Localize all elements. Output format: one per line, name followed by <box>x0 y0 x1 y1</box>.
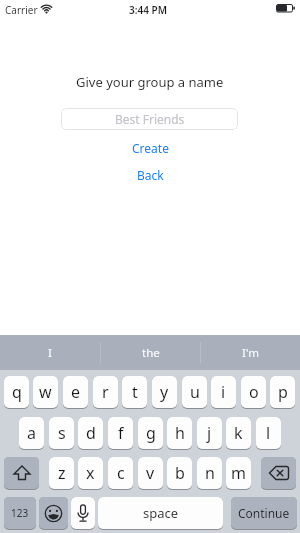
staticText: f <box>118 422 124 444</box>
button[interactable]: the <box>101 335 200 370</box>
button[interactable]: I'm <box>201 335 300 370</box>
staticText: y <box>160 381 169 403</box>
staticText: Give your group a name <box>76 73 224 91</box>
staticText: j <box>207 422 212 444</box>
button[interactable]: d <box>78 417 103 449</box>
staticText: I'm <box>242 345 259 361</box>
staticText: I <box>48 345 52 361</box>
button[interactable]: v <box>138 457 163 489</box>
staticText: z <box>58 462 66 484</box>
button[interactable]: z <box>49 457 74 489</box>
button[interactable]: x <box>78 457 103 489</box>
staticText: x <box>86 462 95 484</box>
button[interactable]: i <box>211 376 236 408</box>
staticText: n <box>205 462 215 484</box>
staticText: q <box>12 381 22 403</box>
button[interactable]: u <box>182 376 207 408</box>
button[interactable]: Best Friends <box>61 108 238 130</box>
button[interactable] <box>71 497 95 529</box>
staticText: c <box>117 462 125 484</box>
button[interactable]: s <box>49 417 74 449</box>
button[interactable]: n <box>197 457 222 489</box>
staticText: s <box>58 422 66 444</box>
staticText: the <box>142 345 160 361</box>
button[interactable]: b <box>167 457 192 489</box>
staticText: m <box>231 462 246 484</box>
button[interactable]: q <box>4 376 29 408</box>
staticText: o <box>249 381 259 403</box>
staticText: e <box>71 381 81 403</box>
staticText: w <box>39 381 52 403</box>
button[interactable]: p <box>270 376 295 408</box>
button[interactable]: a <box>19 417 44 449</box>
staticText: b <box>175 462 185 484</box>
staticText: 123 <box>11 506 29 520</box>
staticText: space <box>143 504 179 522</box>
button[interactable]: t <box>122 376 147 408</box>
button[interactable]: r <box>93 376 118 408</box>
button[interactable]: w <box>33 376 58 408</box>
button[interactable] <box>4 457 39 489</box>
staticText: 3:44 PM <box>129 3 167 17</box>
button[interactable]: Create <box>132 140 169 156</box>
button[interactable]: m <box>226 457 251 489</box>
staticText: t <box>132 381 138 403</box>
staticText: u <box>190 381 200 403</box>
button[interactable] <box>39 497 68 529</box>
staticText: r <box>102 381 109 403</box>
staticText: a <box>27 422 36 444</box>
button[interactable]: 123 <box>4 497 36 529</box>
button[interactable]: h <box>167 417 192 449</box>
staticText: Best Friends <box>115 111 185 127</box>
button[interactable]: Continue <box>231 497 297 529</box>
button[interactable]: l <box>256 417 281 449</box>
button[interactable]: space <box>98 497 223 529</box>
button[interactable]: o <box>241 376 266 408</box>
staticText: Continue <box>238 505 290 521</box>
button[interactable]: j <box>197 417 222 449</box>
staticText: g <box>146 422 156 444</box>
staticText: v <box>146 462 155 484</box>
staticText: l <box>266 422 271 444</box>
button[interactable]: y <box>152 376 177 408</box>
button[interactable]: Back <box>137 167 164 183</box>
button[interactable]: c <box>108 457 133 489</box>
button[interactable]: e <box>63 376 88 408</box>
button[interactable]: g <box>138 417 163 449</box>
staticText: d <box>86 422 96 444</box>
button[interactable]: I <box>0 335 100 370</box>
staticText: h <box>175 422 185 444</box>
button[interactable]: k <box>226 417 251 449</box>
button[interactable] <box>261 457 296 489</box>
staticText: i <box>221 381 226 403</box>
staticText: k <box>234 422 243 444</box>
staticText: p <box>278 381 288 403</box>
staticText: Carrier <box>5 3 38 17</box>
button[interactable]: f <box>108 417 133 449</box>
